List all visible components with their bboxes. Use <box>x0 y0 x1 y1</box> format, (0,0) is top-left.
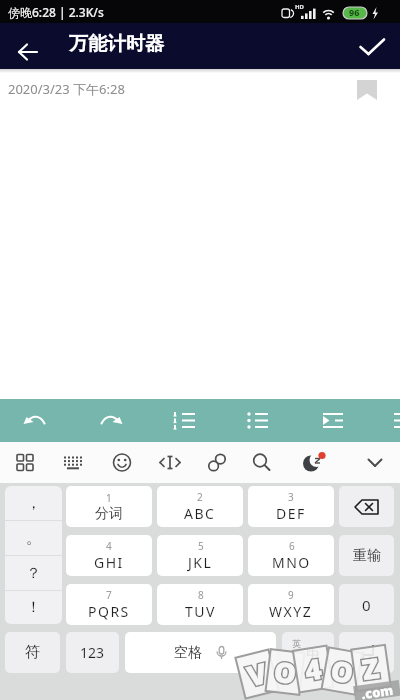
staticText: 123 <box>80 643 105 662</box>
staticText: JKL <box>188 553 213 572</box>
staticText: 6 <box>289 539 295 553</box>
button[interactable] <box>50 442 100 483</box>
staticText: O <box>328 650 357 692</box>
staticText: O <box>272 652 299 692</box>
button[interactable]: 4 <box>66 535 152 576</box>
staticText: HD <box>295 3 304 11</box>
staticText: 。 <box>26 529 41 548</box>
button[interactable] <box>250 442 300 483</box>
button[interactable] <box>0 442 50 483</box>
staticText: GHI <box>94 553 124 572</box>
staticText: Z <box>359 648 382 688</box>
staticText: 重输 <box>353 547 381 565</box>
button[interactable] <box>74 399 148 442</box>
staticText: DEF <box>276 504 306 523</box>
staticText: 2 <box>197 490 203 504</box>
button[interactable] <box>148 399 222 442</box>
staticText: 9 <box>288 588 294 602</box>
button[interactable]: 8 <box>157 584 243 625</box>
staticText: ？ <box>26 564 41 583</box>
staticText: ABC <box>184 504 216 523</box>
button[interactable] <box>100 442 150 483</box>
button[interactable]: 7 <box>66 584 152 625</box>
staticText: TUV <box>185 602 216 621</box>
staticText: O <box>272 652 299 692</box>
button[interactable]: 英 <box>282 632 334 673</box>
staticText: 分词 <box>95 505 123 523</box>
staticText: 傍晚6:28 | 2.3K/s <box>8 4 104 20</box>
staticText: V <box>243 653 271 695</box>
staticText: .com <box>360 681 395 700</box>
button[interactable] <box>300 442 350 483</box>
staticText: V <box>243 653 271 695</box>
staticText: MNO <box>272 553 311 572</box>
staticText: Z <box>359 648 382 688</box>
staticText: 4 <box>302 649 325 689</box>
staticText: WXYZ <box>269 602 313 621</box>
staticText: 96 <box>349 6 360 18</box>
button[interactable] <box>150 442 200 483</box>
button[interactable] <box>339 486 394 527</box>
staticText: 5 <box>198 539 204 553</box>
button[interactable]: 5 <box>157 535 243 576</box>
button[interactable] <box>352 32 392 62</box>
button[interactable] <box>0 399 74 442</box>
button[interactable]: 0 <box>339 584 394 625</box>
staticText: 7 <box>106 588 112 602</box>
button[interactable] <box>296 399 370 442</box>
staticText: PQRS <box>88 602 130 621</box>
staticText: ！ <box>26 598 41 617</box>
button[interactable] <box>350 442 400 483</box>
button[interactable] <box>222 399 296 442</box>
button[interactable]: 1 <box>66 486 152 527</box>
button[interactable]: 123 <box>66 632 119 673</box>
staticText: 8 <box>198 588 204 602</box>
button[interactable]: ？ <box>5 556 62 590</box>
staticText: 0 <box>362 595 371 615</box>
staticText: 2020/3/23 下午6:28 <box>8 80 125 98</box>
staticText: ， <box>26 494 41 513</box>
staticText: 4 <box>106 539 112 553</box>
staticText: 中 <box>306 646 319 662</box>
button[interactable] <box>10 36 46 68</box>
staticText: 符 <box>25 643 40 662</box>
button[interactable]: 2 <box>157 486 243 527</box>
button[interactable]: 6 <box>248 535 334 576</box>
button[interactable]: 空格 <box>125 632 276 673</box>
button[interactable]: ， <box>5 486 62 520</box>
button[interactable] <box>200 442 250 483</box>
staticText: 3 <box>288 490 294 504</box>
staticText: O <box>328 650 357 692</box>
button[interactable]: 3 <box>248 486 334 527</box>
button[interactable]: 重输 <box>339 535 394 576</box>
button[interactable]: 9 <box>248 584 334 625</box>
staticText: 4 <box>302 649 325 689</box>
staticText: 英 <box>292 638 301 649</box>
button[interactable]: ！ <box>5 591 62 624</box>
button[interactable]: 符 <box>5 632 60 673</box>
staticText: 1 <box>106 491 112 505</box>
button[interactable] <box>339 632 394 673</box>
button[interactable]: 。 <box>5 521 62 555</box>
staticText: 空格 <box>174 644 202 662</box>
staticText: 万能计时器 <box>69 32 164 56</box>
